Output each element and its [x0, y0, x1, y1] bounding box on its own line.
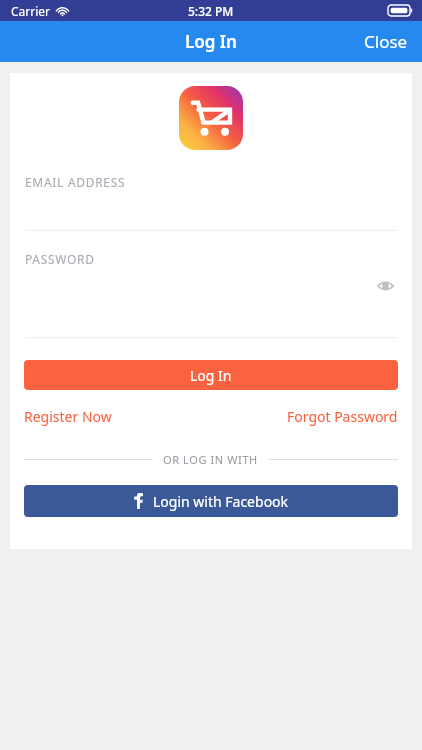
staticText: Register Now — [24, 407, 112, 426]
staticText: OR LOG IN WITH — [163, 452, 258, 467]
staticText: Login with Facebook — [153, 492, 289, 511]
staticText: Log In — [190, 366, 232, 385]
staticText: Close — [364, 30, 408, 53]
staticText: PASSWORD — [25, 251, 95, 267]
button[interactable]: Show password — [372, 273, 398, 299]
button[interactable]: Forgot Password — [287, 407, 398, 426]
button[interactable]: Log In — [24, 360, 398, 390]
button[interactable]: Close — [350, 22, 422, 61]
staticText: Carrier — [11, 3, 51, 19]
button[interactable]: Register Now — [24, 407, 112, 426]
staticText: EMAIL ADDRESS — [25, 174, 126, 190]
staticText: Forgot Password — [287, 407, 398, 426]
staticText: Log In — [185, 30, 237, 53]
button[interactable]: Login with Facebook — [24, 485, 398, 517]
staticText: 5:32 PM — [188, 3, 234, 19]
